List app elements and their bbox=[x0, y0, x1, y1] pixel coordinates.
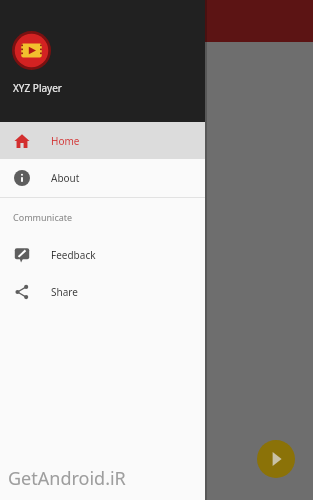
button[interactable]: Play bbox=[257, 440, 295, 478]
staticText: Feedback bbox=[51, 248, 96, 262]
button[interactable]: Home bbox=[0, 122, 205, 159]
staticText: Communicate bbox=[13, 211, 73, 223]
staticText: XYZ Player bbox=[13, 81, 62, 95]
button[interactable]: Feedback bbox=[0, 236, 205, 273]
staticText: Share bbox=[51, 285, 78, 299]
staticText: GetAndroid.iR bbox=[8, 466, 126, 491]
button[interactable]: About bbox=[0, 159, 205, 196]
staticText: About bbox=[51, 171, 80, 185]
button[interactable]: Share bbox=[0, 273, 205, 310]
staticText: Home bbox=[51, 134, 80, 148]
